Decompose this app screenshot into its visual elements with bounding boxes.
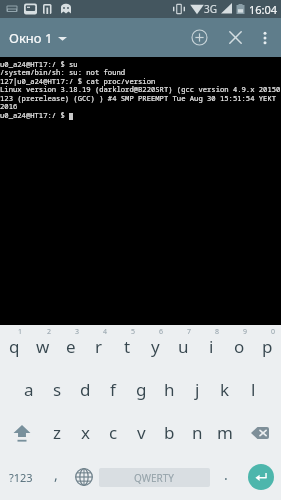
staticText: 1 — [18, 327, 23, 337]
staticText: v — [137, 421, 146, 444]
button[interactable]: Shift — [0, 411, 43, 454]
staticText: 8 — [215, 327, 220, 337]
staticText: o — [234, 335, 245, 358]
staticText: d — [80, 378, 91, 401]
staticText: QWERTY — [134, 471, 175, 485]
staticText: 0 — [271, 327, 276, 337]
button[interactable]: n — [183, 411, 211, 454]
staticText: z — [53, 421, 61, 444]
button[interactable]: ?123 — [0, 454, 42, 500]
button[interactable]: i — [197, 325, 225, 368]
button[interactable]: g — [127, 368, 155, 411]
button[interactable]: v — [127, 411, 155, 454]
staticText: 127|u0_a24@HT17:/ $ cat proc/version — [0, 76, 156, 86]
staticText: k — [220, 378, 230, 401]
button[interactable]: . — [212, 454, 240, 500]
staticText: 2016 — [0, 101, 18, 111]
staticText: y — [151, 335, 160, 358]
button[interactable]: c — [99, 411, 127, 454]
staticText: 4 — [103, 327, 108, 337]
staticText: 2 — [47, 327, 52, 337]
button[interactable]: z — [43, 411, 71, 454]
staticText: ?123 — [9, 470, 33, 485]
staticText: 16:04 — [249, 2, 278, 17]
staticText: u — [178, 335, 189, 358]
staticText: l — [251, 378, 256, 401]
button[interactable]: r — [85, 325, 113, 368]
button[interactable]: New window — [185, 23, 214, 52]
staticText: , — [54, 465, 58, 484]
staticText: x — [81, 421, 90, 444]
button[interactable]: h — [155, 368, 183, 411]
button[interactable]: Enter — [240, 454, 281, 500]
button[interactable]: QWERTY — [99, 454, 210, 500]
staticText: u0_a24@HT17:/ $ — [0, 110, 70, 120]
button[interactable]: Backspace — [239, 411, 281, 454]
button[interactable]: More options — [252, 25, 278, 51]
staticText: r — [95, 335, 103, 358]
staticText: g — [136, 378, 147, 401]
button[interactable]: b — [155, 411, 183, 454]
staticText: q — [9, 335, 20, 358]
staticText: h — [164, 378, 175, 401]
button[interactable]: t — [113, 325, 141, 368]
button[interactable]: l — [239, 368, 267, 411]
staticText: c — [109, 421, 118, 444]
staticText: j — [195, 378, 200, 401]
button[interactable]: e — [57, 325, 85, 368]
staticText: p — [262, 335, 273, 358]
button[interactable]: m — [211, 411, 239, 454]
staticText: Linux version 3.18.19 (darklord@B220SRT)… — [0, 84, 281, 94]
button[interactable]: d — [71, 368, 99, 411]
button[interactable]: a — [15, 368, 43, 411]
staticText: /system/bin/sh: su: not found — [0, 67, 126, 77]
staticText: a — [24, 378, 34, 401]
staticText: t — [124, 335, 131, 358]
staticText: s — [53, 378, 62, 401]
button[interactable]: u — [169, 325, 197, 368]
button[interactable]: k — [211, 368, 239, 411]
staticText: 5 — [131, 327, 136, 337]
button[interactable]: Close window — [221, 23, 250, 52]
staticText: n — [192, 421, 203, 444]
button[interactable]: q — [0, 325, 29, 368]
button[interactable]: j — [183, 368, 211, 411]
staticText: 3G — [204, 2, 217, 16]
staticText: i — [209, 335, 214, 358]
staticText: 123 (prerelease) (GCC) ) #4 SMP PREEMPT … — [0, 93, 277, 103]
button[interactable]: y — [141, 325, 169, 368]
button[interactable]: f — [99, 368, 127, 411]
staticText: w — [36, 335, 50, 358]
staticText: 6 — [159, 327, 164, 337]
button[interactable]: p — [253, 325, 281, 368]
staticText: Окно 1 — [9, 29, 53, 47]
button[interactable]: o — [225, 325, 253, 368]
staticText: f — [110, 378, 116, 401]
staticText: 9 — [243, 327, 248, 337]
staticText: u0_a24@HT17:/ $ su — [0, 59, 78, 69]
button[interactable]: Change language — [70, 454, 97, 500]
staticText: e — [66, 335, 76, 358]
staticText: 3 — [75, 327, 80, 337]
staticText: . — [224, 465, 228, 484]
staticText: m — [217, 421, 233, 444]
button[interactable]: s — [43, 368, 71, 411]
staticText: b — [164, 421, 175, 444]
staticText: 7 — [187, 327, 192, 337]
button[interactable]: x — [71, 411, 99, 454]
button[interactable]: w — [29, 325, 57, 368]
button[interactable]: Окно 1 — [0, 24, 75, 52]
button[interactable]: , — [42, 454, 70, 500]
